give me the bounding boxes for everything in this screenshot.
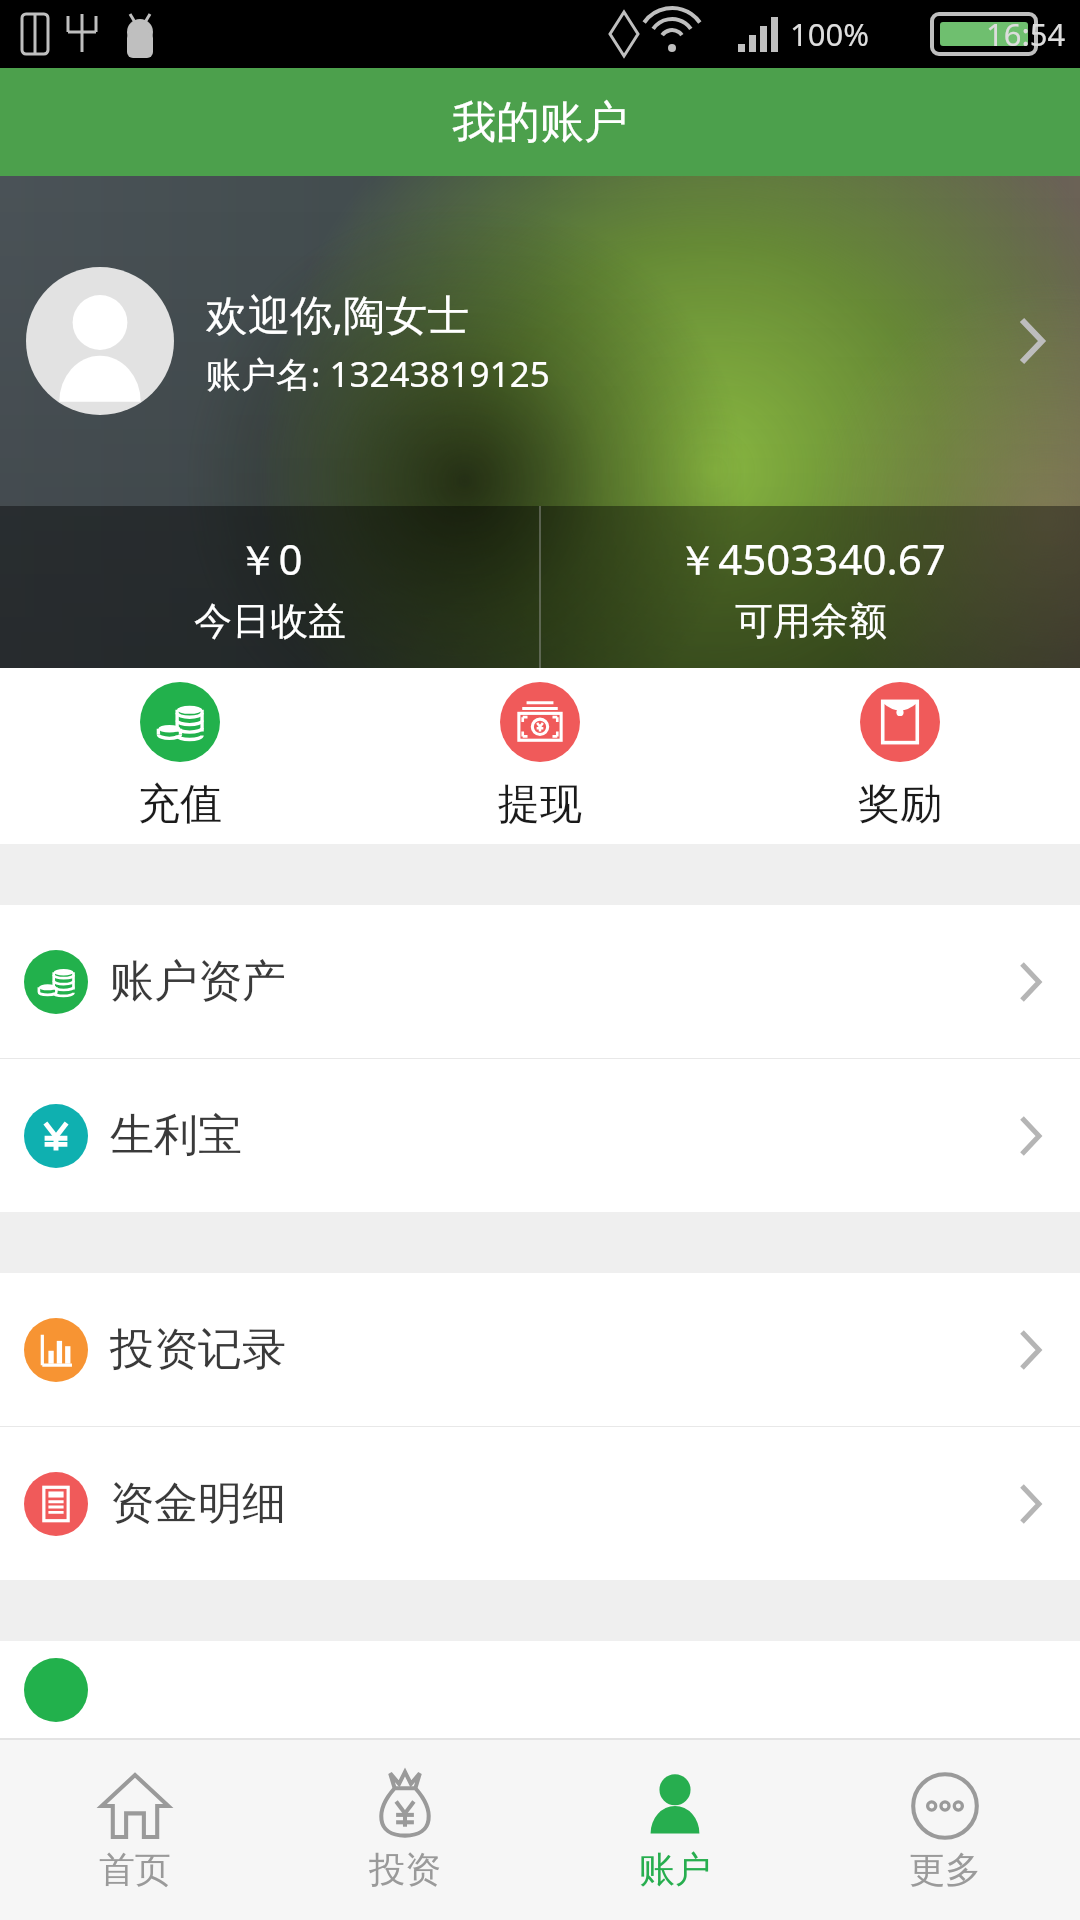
staticText: 更多 [909,1847,981,1892]
button[interactable]: 首页 [0,1740,270,1920]
staticText: 可用余额 [735,597,887,645]
other: 首页 [98,1769,172,1843]
button[interactable]: 奖励 [720,668,1080,844]
staticText: 100% [790,13,869,55]
button[interactable]: ￥0 [0,506,539,668]
staticText: 奖励 [858,778,942,831]
button[interactable]: 投资记录 [0,1273,1080,1426]
staticText: ￥0 [236,530,303,587]
button[interactable]: 账户资产 [0,905,1080,1058]
staticText: 投资记录 [110,1322,286,1377]
staticText: ￥4503340.67 [676,530,946,587]
button[interactable]: 欢迎你,陶女士 [0,176,1080,506]
staticText: 首页 [99,1847,171,1892]
button[interactable] [0,1641,1080,1738]
button[interactable]: 生利宝 [0,1059,1080,1212]
other: 投资 [368,1769,442,1843]
button[interactable]: 提现 [360,668,720,844]
button[interactable]: 更多 [810,1740,1080,1920]
button[interactable]: ￥4503340.67 [541,506,1080,668]
staticText: 充值 [138,778,222,831]
button[interactable]: 充值 [0,668,360,844]
button[interactable]: 账户 [540,1740,810,1920]
staticText: 欢迎你,陶女士 [206,285,470,342]
staticText: 提现 [498,778,582,831]
staticText: 账户资产 [110,954,286,1009]
staticText: 生利宝 [110,1108,242,1163]
other: 账户 [638,1769,712,1843]
staticText: 账户名: 13243819125 [206,350,550,398]
other: 更多 [908,1769,982,1843]
staticText: 资金明细 [110,1476,286,1531]
staticText: 今日收益 [194,597,346,645]
staticText: 账户 [639,1847,711,1892]
button[interactable]: 资金明细 [0,1427,1080,1580]
staticText: 投资 [369,1847,441,1892]
button[interactable]: 投资 [270,1740,540,1920]
staticText: 我的账户 [452,95,628,150]
staticText: 16:54 [986,13,1066,55]
